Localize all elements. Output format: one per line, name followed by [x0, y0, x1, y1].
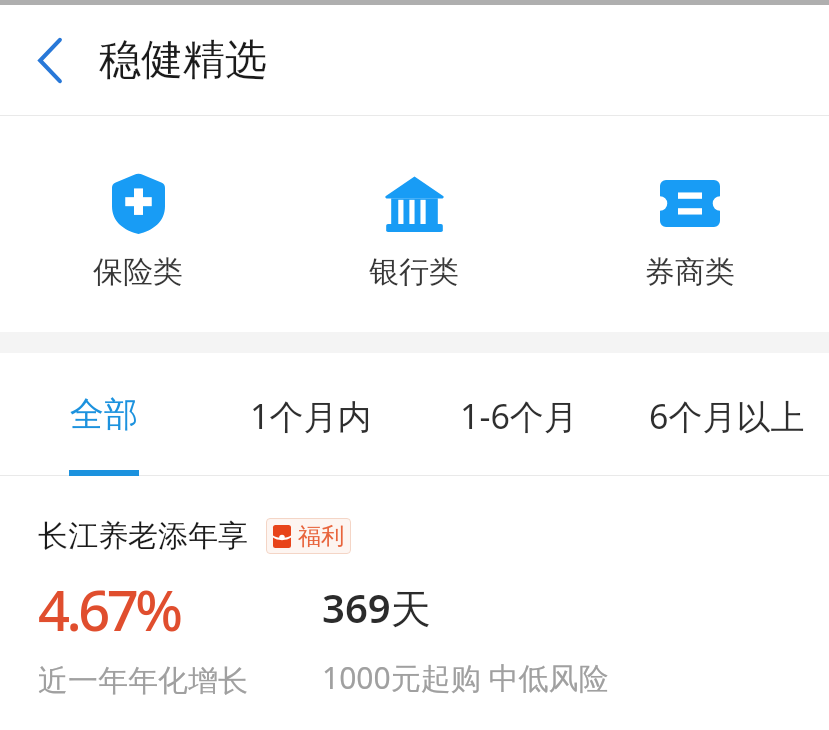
button[interactable]: 6个月以上: [630, 353, 823, 476]
staticText: 6个月以上: [649, 393, 805, 439]
staticText: 长江养老添年享: [38, 517, 248, 555]
button[interactable]: 长江养老添年享: [0, 476, 829, 700]
button[interactable]: 1个月内: [234, 353, 388, 476]
button[interactable]: 券商类: [643, 116, 737, 296]
button[interactable]: Back: [14, 16, 86, 104]
staticText: 福利: [298, 522, 344, 551]
staticText: 稳健精选: [99, 34, 267, 87]
button[interactable]: 保险类: [91, 116, 185, 296]
staticText: 1个月内: [250, 393, 372, 439]
staticText: 1000元起购 中低风险: [322, 657, 609, 698]
staticText: 全部: [70, 393, 138, 436]
button[interactable]: 全部: [52, 353, 155, 476]
staticText: 1-6个月: [460, 393, 578, 439]
staticText: 近一年年化增长: [38, 662, 248, 700]
staticText: 保险类: [93, 253, 183, 291]
button[interactable]: 银行类: [367, 116, 461, 296]
staticText: 369天: [322, 580, 431, 635]
staticText: 银行类: [369, 253, 459, 291]
button[interactable]: 1-6个月: [443, 353, 594, 476]
staticText: 券商类: [645, 253, 735, 291]
staticText: 4.67%: [38, 571, 180, 647]
